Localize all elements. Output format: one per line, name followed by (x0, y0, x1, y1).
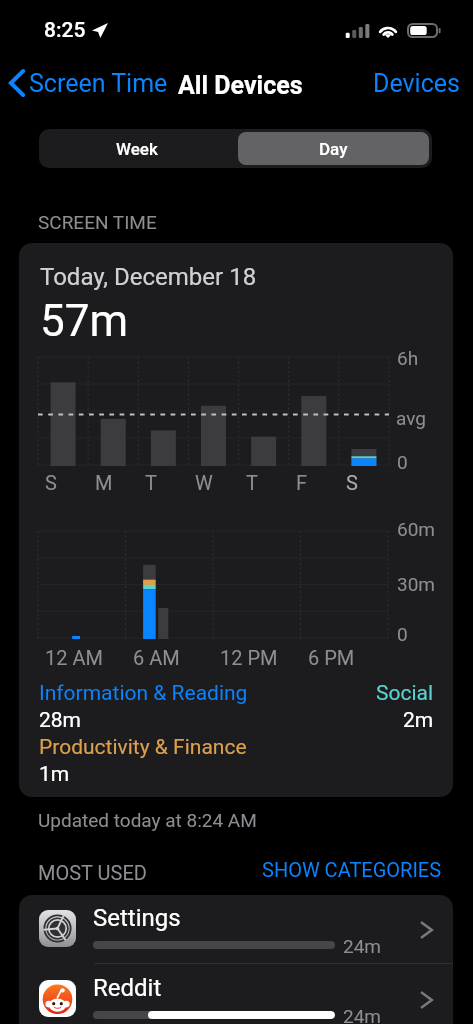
staticText: 0 (397, 623, 408, 645)
staticText: avg (396, 407, 426, 429)
button[interactable]: Week (39, 129, 235, 168)
staticText: Social (376, 681, 434, 706)
staticText: 6h (397, 347, 419, 369)
staticText: 30m (397, 573, 436, 595)
staticText: Information & Reading (39, 681, 248, 706)
button[interactable]: Settings (19, 895, 453, 965)
staticText: SHOW CATEGORIES (262, 858, 442, 881)
staticText: 24m (343, 1005, 382, 1024)
button[interactable]: Day (238, 132, 429, 165)
staticText: 1m (39, 762, 70, 787)
other: Show details (419, 987, 435, 1013)
other: Show details (419, 917, 435, 943)
staticText: 57m (40, 295, 129, 347)
staticText: W (195, 471, 213, 494)
staticText: S (346, 471, 358, 494)
staticText: S (45, 471, 57, 494)
staticText: 24m (343, 935, 382, 957)
staticText: F (296, 471, 308, 494)
staticText: 12 PM (220, 646, 278, 669)
staticText: Settings (93, 904, 181, 932)
staticText: Screen Time (29, 69, 168, 98)
staticText: Week (116, 139, 158, 159)
staticText: 12 AM (45, 646, 103, 669)
staticText: Productivity & Finance (39, 735, 247, 760)
staticText: SCREEN TIME (38, 211, 157, 233)
staticText: 28m (39, 708, 82, 733)
staticText: 0 (397, 451, 408, 473)
staticText: All Devices (178, 71, 303, 100)
staticText: 60m (397, 518, 436, 540)
staticText: T (145, 471, 157, 494)
staticText: 6 AM (133, 646, 180, 669)
staticText: 2m (403, 708, 434, 733)
button[interactable]: Devices (366, 64, 467, 102)
staticText: 8:25 (44, 18, 86, 43)
staticText: Devices (373, 69, 460, 98)
staticText: T (246, 471, 258, 494)
staticText: 6 PM (308, 646, 355, 669)
staticText: Updated today at 8:24 AM (38, 809, 257, 831)
staticText: Reddit (93, 974, 162, 1002)
button[interactable]: SHOW CATEGORIES (255, 855, 449, 883)
staticText: Today, December 18 (40, 263, 257, 291)
staticText: M (95, 471, 113, 494)
staticText: MOST USED (38, 861, 147, 884)
button[interactable]: Reddit (19, 965, 453, 1024)
button[interactable]: Screen Time (3, 63, 174, 103)
staticText: Day (319, 139, 348, 159)
